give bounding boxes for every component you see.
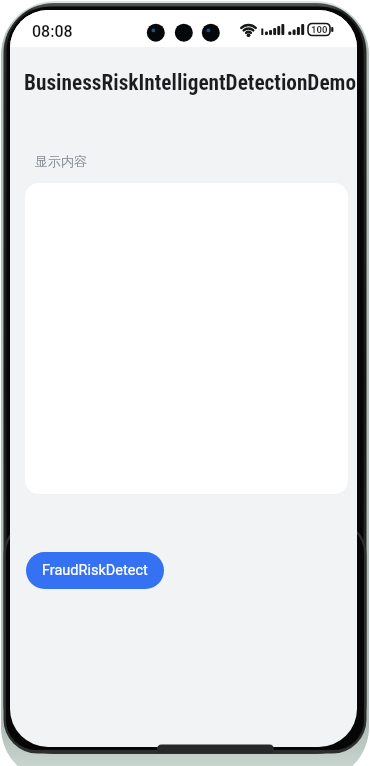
staticText: 08:08 <box>32 22 73 41</box>
staticText: 100 <box>311 24 328 35</box>
button[interactable]: FraudRiskDetect <box>26 552 164 589</box>
staticText: 显示内容 <box>35 153 87 169</box>
staticText: BusinessRiskIntelligentDetectionDemo <box>24 70 357 95</box>
staticText: FraudRiskDetect <box>42 562 148 579</box>
